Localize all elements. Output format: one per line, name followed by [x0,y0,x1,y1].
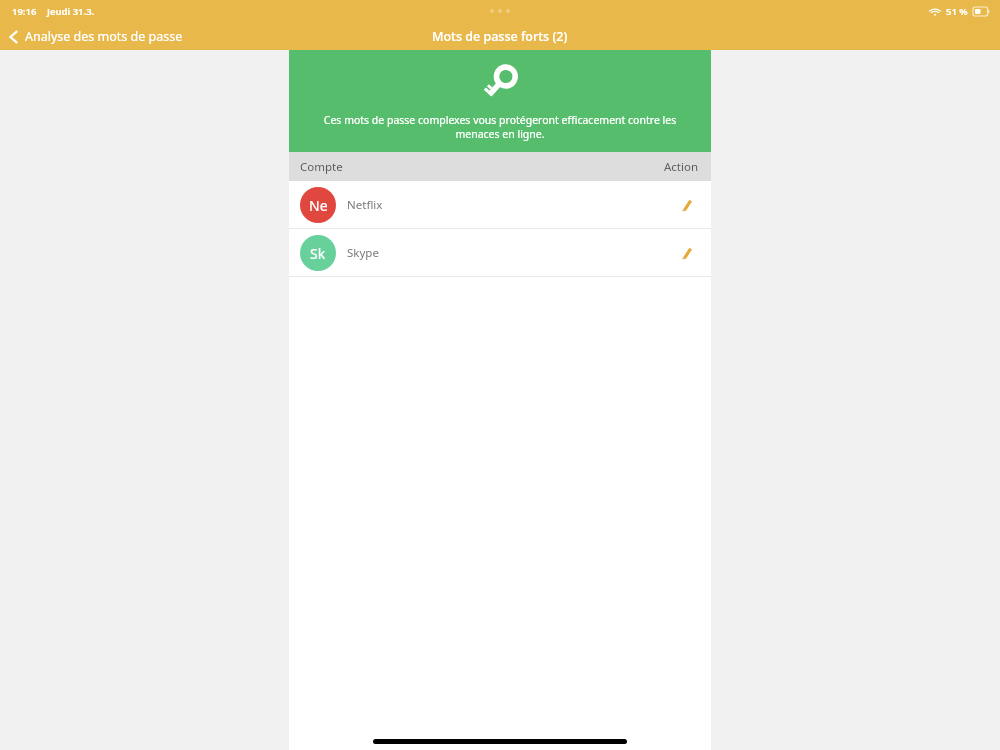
staticText: Compte [300,159,343,175]
staticText: Sk [310,244,326,263]
staticText: Ne [309,196,328,215]
staticText: Mots de passe forts (2) [432,28,568,45]
button[interactable]: Modifier Netflix [671,190,701,220]
staticText: Ces mots de passe complexes vous protége… [305,113,695,141]
button[interactable]: Ne [289,181,711,228]
button[interactable]: Sk [289,229,711,276]
staticText: 51 % [946,5,968,18]
button[interactable]: Analyse des mots de passe [0,24,193,49]
staticText: 19:16 [12,5,37,18]
staticText: Jeudi 31.3. [47,5,95,18]
staticText: Netflix [347,197,383,213]
staticText: Analyse des mots de passe [25,28,183,45]
button[interactable]: Modifier Skype [671,238,701,268]
staticText: Skype [347,245,379,261]
staticText: Action [664,159,699,175]
